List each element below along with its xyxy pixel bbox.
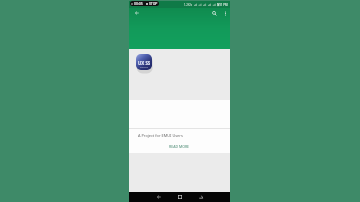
staticText: READ MORE	[169, 144, 190, 149]
staticText: STOP	[149, 1, 158, 6]
staticText: A Project for EMUI Users	[138, 133, 183, 138]
staticText: android	[140, 66, 149, 69]
button[interactable]: READ MORE	[165, 142, 194, 151]
button[interactable]: Search	[208, 7, 220, 19]
button[interactable]: Recents	[196, 192, 206, 202]
button[interactable]: More options	[219, 7, 231, 19]
staticText: 9:11 PM	[217, 3, 228, 7]
button[interactable]: App icon	[136, 54, 152, 70]
button[interactable]: Back	[154, 192, 164, 202]
button[interactable]: Back	[131, 7, 143, 19]
staticText: UX SS	[138, 60, 151, 66]
staticText: 00:05	[134, 1, 143, 6]
staticText: 1.2K/s	[184, 3, 193, 7]
button[interactable]: Home	[175, 192, 185, 202]
